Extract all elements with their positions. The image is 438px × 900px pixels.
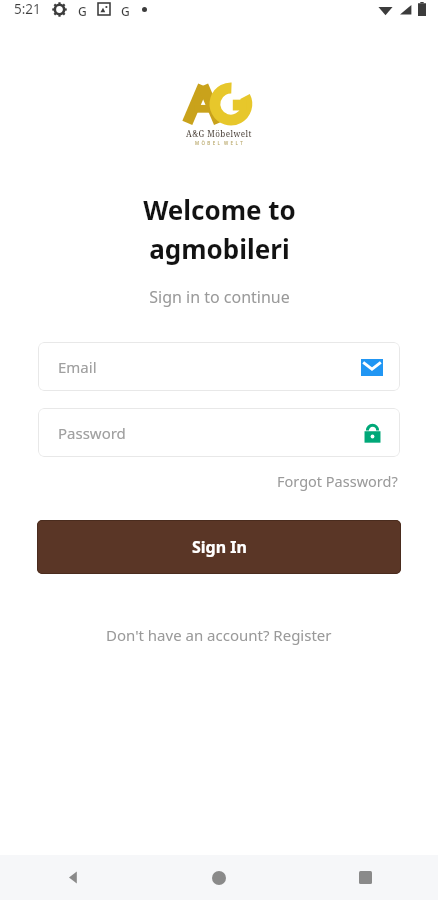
staticText: Email: [58, 357, 97, 377]
button[interactable]: Home: [146, 855, 292, 900]
button[interactable]: Forgot Password?: [275, 469, 400, 493]
staticText: Welcome to: [143, 192, 296, 227]
staticText: G: [121, 3, 130, 16]
button[interactable]: Sign In: [37, 520, 401, 574]
staticText: M Ö B E L W E L T: [195, 140, 244, 146]
button[interactable]: Don't have an account? Register: [100, 621, 338, 649]
staticText: G: [78, 3, 87, 16]
other: Password: [360, 421, 384, 445]
staticText: Password: [58, 423, 126, 443]
staticText: A&G Möbelwelt: [186, 128, 252, 139]
staticText: 5:21: [14, 0, 41, 18]
staticText: Don't have an account? Register: [106, 625, 332, 645]
staticText: Sign In: [192, 536, 247, 558]
staticText: agmobileri: [149, 231, 290, 266]
button[interactable]: Recent apps: [292, 855, 438, 900]
button[interactable]: Email: [38, 342, 400, 391]
staticText: Sign in to continue: [149, 286, 290, 308]
staticText: Forgot Password?: [277, 471, 398, 491]
button[interactable]: Password: [38, 408, 400, 457]
other: Email: [360, 355, 384, 379]
button[interactable]: Back: [0, 855, 146, 900]
